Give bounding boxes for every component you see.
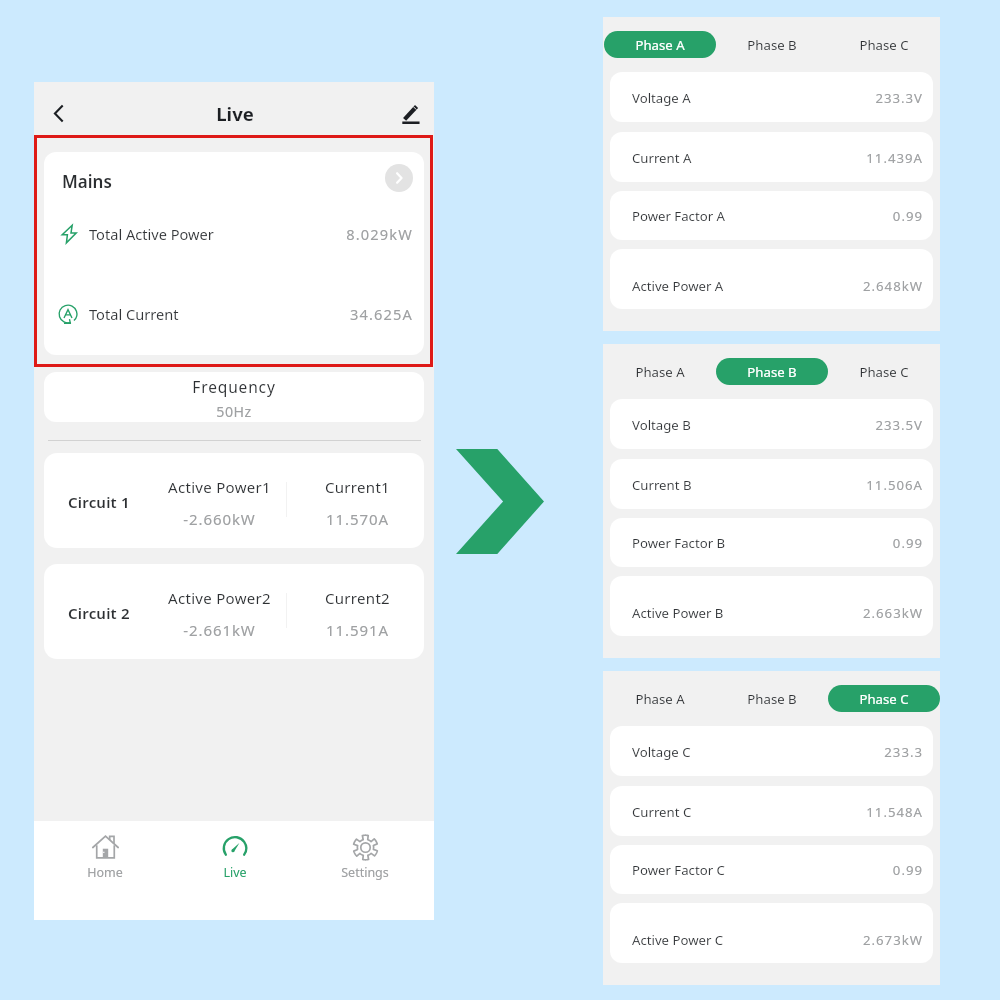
staticText: 233.5V xyxy=(875,416,923,434)
button[interactable]: Circuit 1 xyxy=(44,453,424,548)
staticText: Voltage B xyxy=(632,416,691,434)
staticText: Circuit 1 xyxy=(68,492,130,512)
staticText: Current A xyxy=(632,149,692,167)
button[interactable]: Open Mains details xyxy=(385,164,413,192)
staticText: Phase C xyxy=(859,36,909,54)
button[interactable] xyxy=(610,191,933,240)
staticText: 11.506A xyxy=(866,476,923,494)
button[interactable]: Phase A xyxy=(604,31,716,58)
button[interactable] xyxy=(610,903,933,963)
staticText: Total Current xyxy=(89,304,179,324)
button[interactable]: Phase C xyxy=(828,358,940,385)
button[interactable]: Mains xyxy=(44,152,424,355)
staticText: 11.548A xyxy=(866,803,923,821)
staticText: 11.591A xyxy=(326,620,389,640)
staticText: Live xyxy=(223,864,247,881)
button[interactable]: Edit xyxy=(395,96,427,128)
button[interactable] xyxy=(610,576,933,636)
staticText: Mains xyxy=(62,170,112,193)
staticText: 11.439A xyxy=(866,149,923,167)
staticText: 2.673kW xyxy=(862,931,923,949)
staticText: 11.570A xyxy=(326,509,389,529)
staticText: -2.661kW xyxy=(183,620,256,640)
staticText: Phase A xyxy=(635,690,685,708)
staticText: 50Hz xyxy=(216,402,252,421)
button[interactable]: Frequency xyxy=(44,372,424,422)
staticText: Power Factor C xyxy=(632,861,725,879)
button[interactable] xyxy=(610,786,933,836)
staticText: Voltage A xyxy=(632,89,691,107)
staticText: Active Power1 xyxy=(168,477,271,497)
staticText: Current2 xyxy=(325,588,390,608)
staticText: Phase C xyxy=(859,363,909,381)
button[interactable]: Phase C xyxy=(828,31,940,58)
staticText: 8.029kW xyxy=(346,224,413,244)
staticText: 2.648kW xyxy=(862,277,923,295)
staticText: 2.663kW xyxy=(862,604,923,622)
staticText: 0.99 xyxy=(892,534,923,552)
button[interactable]: Phase C xyxy=(828,685,940,712)
staticText: Active Power A xyxy=(632,277,724,295)
staticText: 0.99 xyxy=(892,861,923,879)
staticText: Active Power B xyxy=(632,604,724,622)
staticText: Live xyxy=(216,101,254,126)
button[interactable] xyxy=(610,132,933,182)
staticText: 233.3V xyxy=(875,89,923,107)
staticText: Circuit 2 xyxy=(68,603,130,623)
button[interactable] xyxy=(610,399,933,449)
button[interactable] xyxy=(610,249,933,309)
staticText: Total Active Power xyxy=(89,224,214,244)
staticText: Phase A xyxy=(635,363,685,381)
button[interactable] xyxy=(610,726,933,776)
button[interactable] xyxy=(610,518,933,567)
button[interactable] xyxy=(610,845,933,894)
staticText: Power Factor B xyxy=(632,534,726,552)
button[interactable]: Back xyxy=(42,97,74,129)
staticText: Active Power C xyxy=(632,931,724,949)
staticText: Phase B xyxy=(747,36,797,54)
staticText: Frequency xyxy=(192,376,276,397)
staticText: Current B xyxy=(632,476,692,494)
button[interactable]: Live xyxy=(185,821,285,920)
staticText: Phase B xyxy=(747,363,797,381)
staticText: Current1 xyxy=(325,477,390,497)
button[interactable]: Phase A xyxy=(604,358,716,385)
staticText: Phase A xyxy=(635,36,685,54)
staticText: Settings xyxy=(341,864,389,881)
button[interactable]: Home xyxy=(55,821,155,920)
staticText: Active Power2 xyxy=(168,588,271,608)
staticText: Voltage C xyxy=(632,743,691,761)
staticText: Home xyxy=(87,864,123,881)
staticText: 34.625A xyxy=(349,304,413,324)
staticText: Phase B xyxy=(747,690,797,708)
staticText: Phase C xyxy=(859,690,909,708)
button[interactable]: Circuit 2 xyxy=(44,564,424,659)
button[interactable]: Phase B xyxy=(716,358,828,385)
staticText: -2.660kW xyxy=(183,509,256,529)
staticText: Power Factor A xyxy=(632,207,725,225)
button[interactable]: Phase B xyxy=(716,685,828,712)
button[interactable] xyxy=(610,459,933,509)
staticText: 233.3 xyxy=(884,743,923,761)
staticText: Current C xyxy=(632,803,692,821)
button[interactable]: Settings xyxy=(315,821,415,920)
staticText: 0.99 xyxy=(892,207,923,225)
button[interactable]: Phase A xyxy=(604,685,716,712)
button[interactable]: Phase B xyxy=(716,31,828,58)
button[interactable] xyxy=(610,72,933,122)
